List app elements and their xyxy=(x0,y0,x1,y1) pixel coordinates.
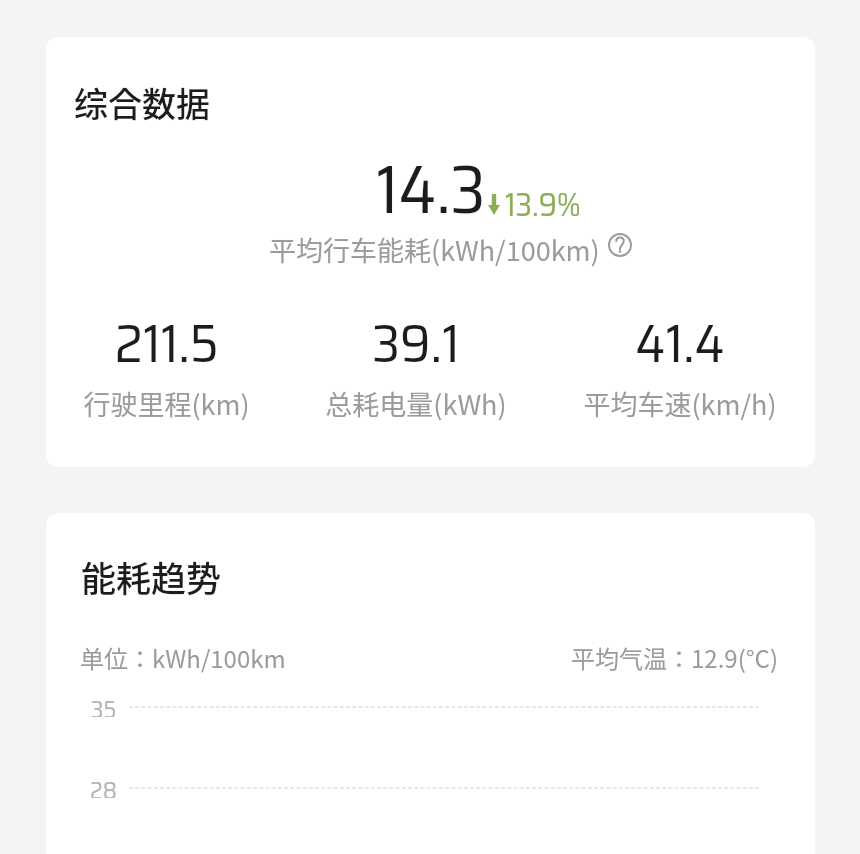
staticText: 能耗趋势 xyxy=(81,551,222,602)
button[interactable]: 能耗趋势 xyxy=(46,513,815,854)
staticText: 211.5 xyxy=(114,301,219,386)
staticText: 平均车速(km/h) xyxy=(583,384,777,423)
staticText: 41.4 xyxy=(635,301,725,386)
staticText: 总耗电量(kWh) xyxy=(325,384,507,423)
button[interactable]: Help about average driving energy consum… xyxy=(608,233,632,257)
staticText: 单位：kWh/100km xyxy=(80,640,286,675)
staticText: 平均行车能耗(kWh/100km) xyxy=(269,230,600,269)
staticText: 13.9% xyxy=(505,180,581,230)
staticText: 35 xyxy=(91,691,117,717)
staticText: 综合数据 xyxy=(74,78,210,127)
button[interactable]: 41.4 xyxy=(570,301,790,461)
staticText: 14.3 xyxy=(376,136,486,243)
staticText: 行驶里程(km) xyxy=(83,384,250,423)
staticText: 平均气温：12.9(°C) xyxy=(571,640,779,675)
staticText: 39.1 xyxy=(372,301,460,386)
button[interactable]: 综合数据 xyxy=(46,37,815,467)
button[interactable]: 211.5 xyxy=(56,301,276,461)
button[interactable]: 39.1 xyxy=(306,301,526,461)
staticText: 28 xyxy=(90,772,117,798)
